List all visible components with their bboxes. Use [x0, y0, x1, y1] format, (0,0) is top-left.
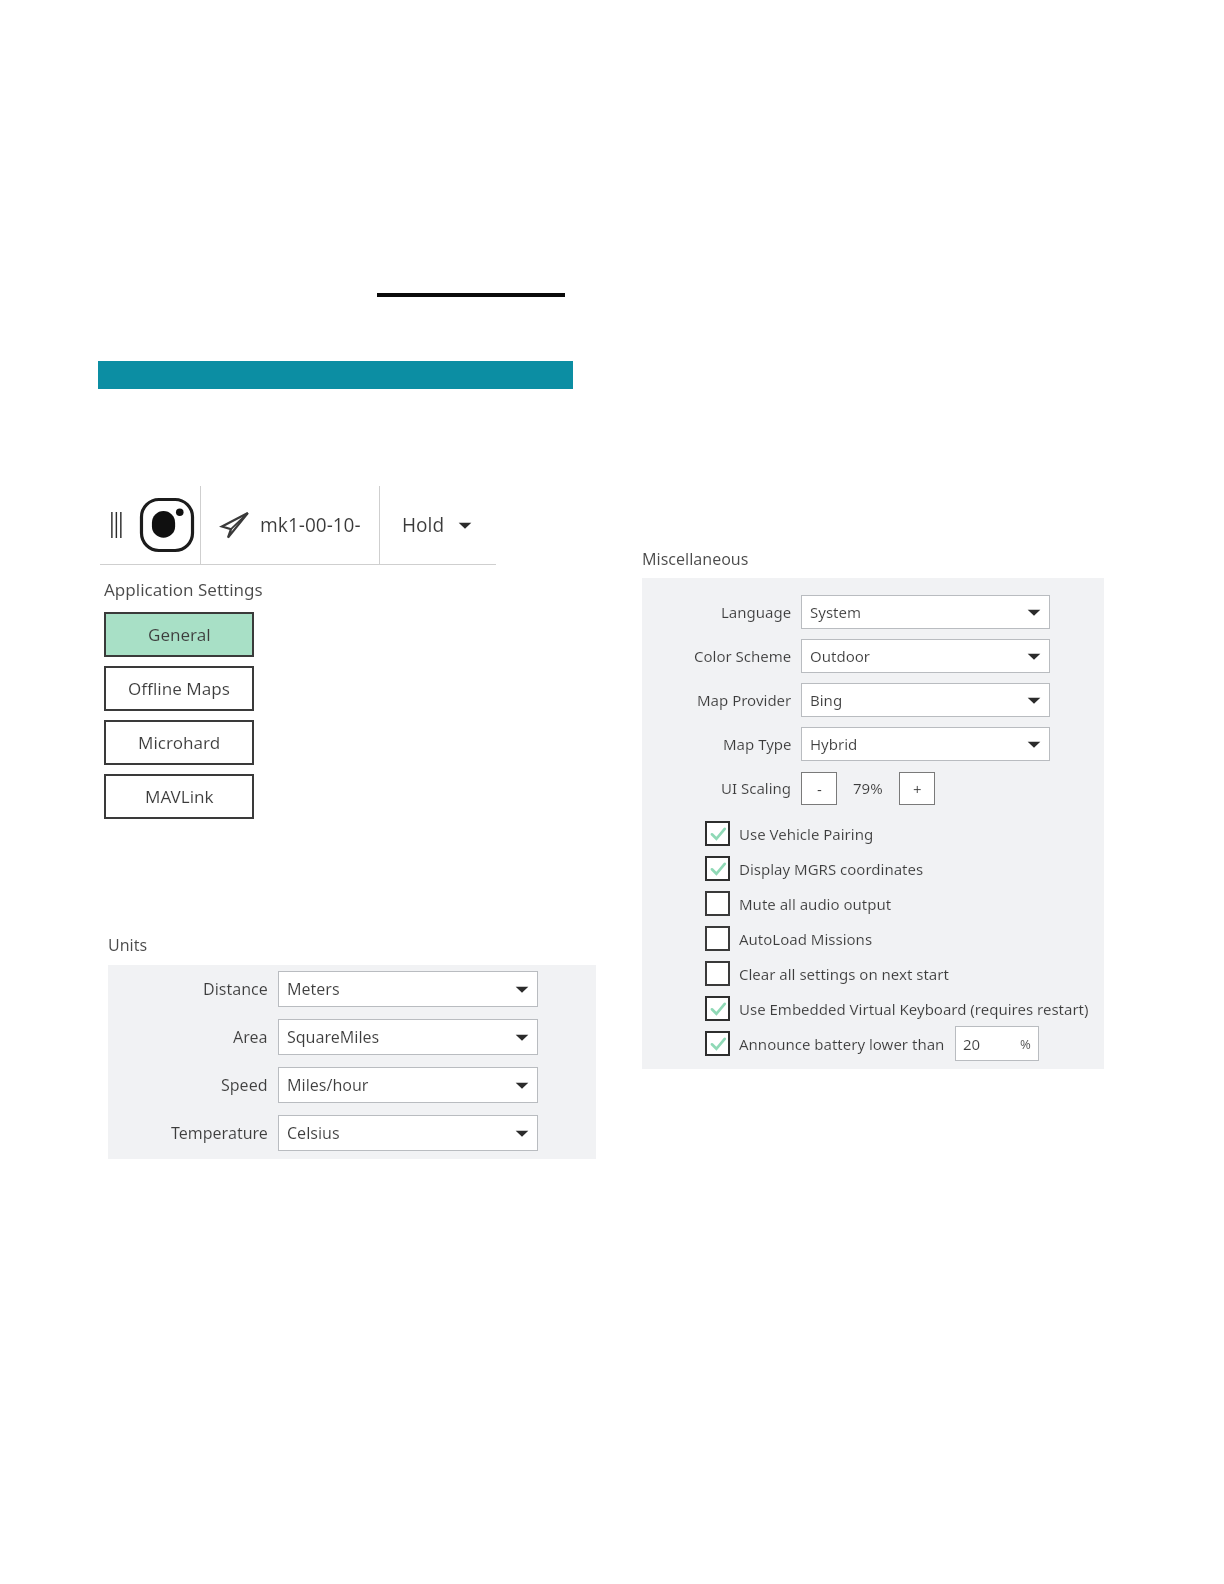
staticText: +: [913, 779, 922, 799]
button[interactable]: Outdoor: [801, 639, 1050, 673]
staticText: Outdoor: [810, 646, 870, 666]
button[interactable]: App icon: [134, 486, 200, 564]
staticText: Miles/hour: [287, 1074, 369, 1096]
button[interactable]: SquareMiles: [278, 1019, 538, 1055]
button[interactable]: Offline Maps: [104, 666, 254, 711]
button[interactable]: Display MGRS coordinates: [705, 851, 924, 886]
staticText: Map Provider: [697, 690, 792, 710]
staticText: Map Type: [723, 734, 792, 754]
button[interactable]: MAVLink: [104, 774, 254, 819]
staticText: Miscellaneous: [642, 548, 749, 570]
staticText: Color Scheme: [694, 646, 792, 666]
staticText: Bing: [810, 690, 843, 710]
staticText: Temperature: [171, 1122, 268, 1144]
staticText: Area: [233, 1026, 268, 1048]
staticText: AutoLoad Missions: [739, 929, 873, 949]
staticText: Language: [721, 602, 792, 622]
staticText: MAVLink: [145, 785, 214, 808]
staticText: Hold: [402, 512, 445, 538]
button[interactable]: General: [104, 612, 254, 657]
button[interactable]: Use Embedded Virtual Keyboard (requires …: [705, 991, 1089, 1026]
staticText: Use Vehicle Pairing: [739, 824, 874, 844]
button[interactable]: System: [801, 595, 1050, 629]
button[interactable]: Mute all audio output: [705, 886, 892, 921]
button[interactable]: 20: [955, 1026, 1039, 1061]
button[interactable]: mk1-00-10-: [201, 486, 379, 564]
staticText: General: [148, 623, 211, 646]
staticText: 20: [963, 1034, 981, 1054]
staticText: Clear all settings on next start: [739, 964, 949, 984]
button[interactable]: Clear all settings on next start: [705, 956, 949, 991]
staticText: Display MGRS coordinates: [739, 859, 924, 879]
staticText: Speed: [221, 1074, 268, 1096]
button[interactable]: Menu: [100, 486, 134, 564]
staticText: mk1-00-10-: [260, 512, 361, 538]
staticText: Microhard: [138, 731, 221, 754]
staticText: Announce battery lower than: [739, 1034, 945, 1054]
button[interactable]: Hold: [380, 486, 494, 564]
button[interactable]: Microhard: [104, 720, 254, 765]
staticText: Offline Maps: [128, 677, 230, 700]
staticText: System: [810, 602, 861, 622]
button[interactable]: Hybrid: [801, 727, 1050, 761]
staticText: Units: [108, 934, 148, 956]
staticText: -: [817, 779, 822, 799]
staticText: Hybrid: [810, 734, 858, 754]
staticText: Meters: [287, 978, 340, 1000]
button[interactable]: Use Vehicle Pairing: [705, 816, 874, 851]
button[interactable]: Celsius: [278, 1115, 538, 1151]
button[interactable]: Bing: [801, 683, 1050, 717]
staticText: %: [1020, 1035, 1031, 1053]
button[interactable]: Meters: [278, 971, 538, 1007]
staticText: Application Settings: [104, 578, 263, 601]
staticText: UI Scaling: [721, 778, 792, 798]
staticText: Mute all audio output: [739, 894, 892, 914]
button[interactable]: Announce battery lower than: [705, 1026, 1039, 1061]
button[interactable]: Miles/hour: [278, 1067, 538, 1103]
button[interactable]: AutoLoad Missions: [705, 921, 873, 956]
button[interactable]: +: [899, 772, 935, 805]
staticText: SquareMiles: [287, 1026, 380, 1048]
staticText: Distance: [203, 978, 268, 1000]
button[interactable]: -: [801, 772, 837, 805]
staticText: Use Embedded Virtual Keyboard (requires …: [739, 999, 1089, 1019]
staticText: Celsius: [287, 1122, 340, 1144]
staticText: 79%: [853, 778, 883, 798]
